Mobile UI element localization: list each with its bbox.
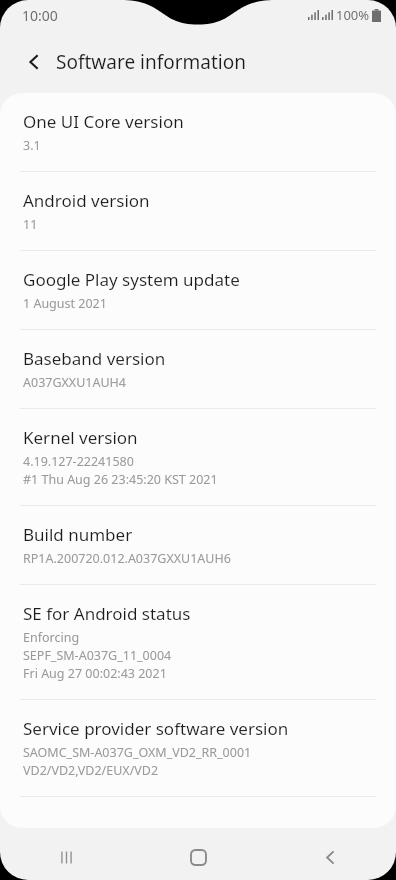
staticText: #1 Thu Aug 26 23:45:20 KST 2021 [23,471,218,488]
staticText: RP1A.200720.012.A037GXXU1AUH6 [23,550,231,567]
staticText: Google Play system update [23,268,240,291]
button[interactable]: Service provider software version [0,700,396,796]
staticText: 4.19.127-22241580 [23,453,134,470]
staticText: SEPF_SM-A037G_11_0004 [23,647,172,664]
button[interactable]: Baseband version [0,330,396,408]
staticText: Build number [23,523,133,546]
staticText: 100% [336,6,370,24]
staticText: 3.1 [23,137,41,154]
staticText: 10:00 [22,6,58,25]
button[interactable]: Home [132,835,264,880]
staticText: 11 [23,216,38,233]
staticText: Enforcing [23,629,80,646]
staticText: Fri Aug 27 00:02:43 2021 [23,665,167,682]
staticText: 1 August 2021 [23,295,107,312]
staticText: Service provider software version [23,717,289,740]
button[interactable]: Kernel version [0,409,396,505]
staticText: SAOMC_SM-A037G_OXM_VD2_RR_0001 [23,744,252,761]
staticText: Android version [23,189,150,212]
button[interactable]: Android version [0,172,396,250]
button[interactable]: Build number [0,506,396,584]
button[interactable]: One UI Core version [0,93,396,171]
staticText: SE for Android status [23,602,191,625]
staticText: One UI Core version [23,110,184,133]
staticText: Kernel version [23,426,138,449]
button[interactable]: Recents [0,835,132,880]
button[interactable]: Back [12,40,56,84]
staticText: Software information [56,49,246,75]
staticText: Baseband version [23,347,166,370]
button[interactable]: Back [264,835,396,880]
button[interactable]: Google Play system update [0,251,396,329]
staticText: VD2/VD2,VD2/EUX/VD2 [23,762,159,779]
button[interactable]: SE for Android status [0,585,396,699]
staticText: A037GXXU1AUH4 [23,374,127,391]
